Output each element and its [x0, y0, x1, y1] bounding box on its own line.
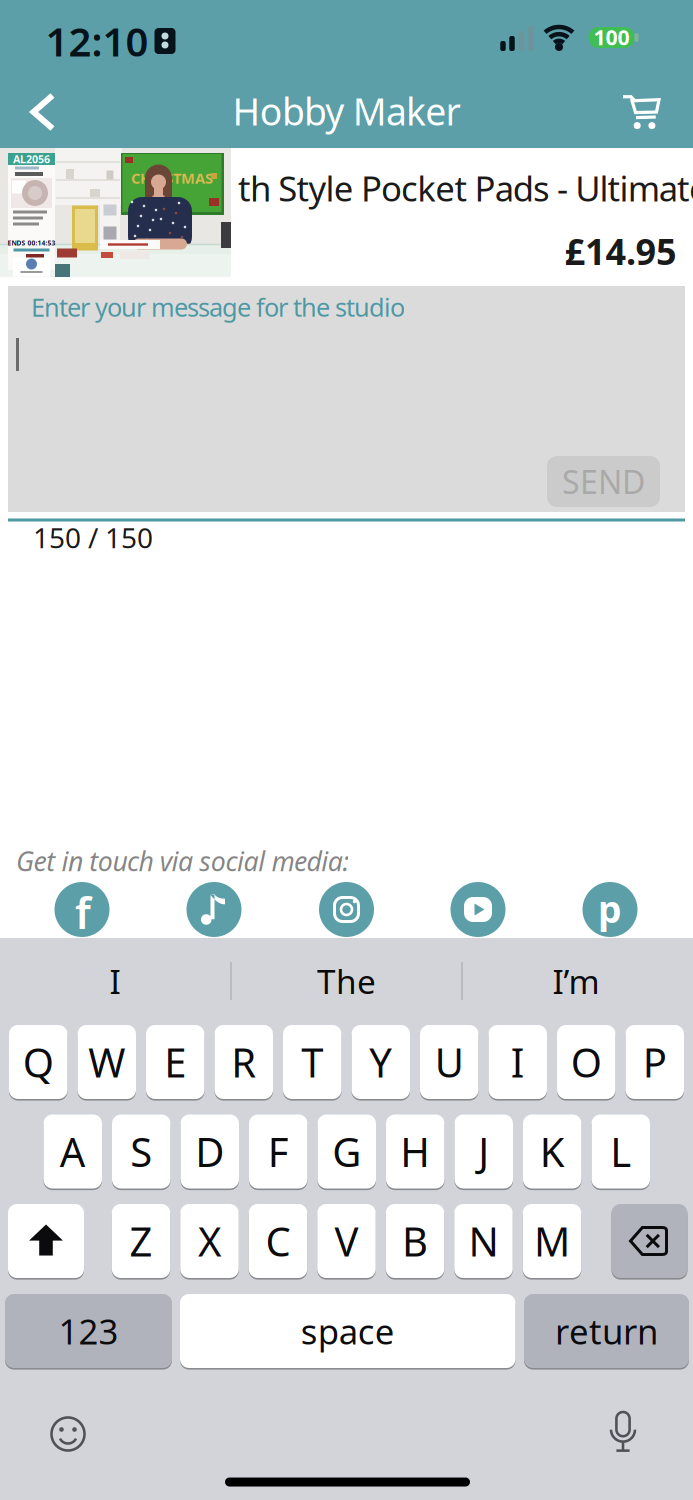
button[interactable]: The	[234, 948, 459, 1014]
staticText: p	[598, 884, 622, 933]
button[interactable]	[8, 1203, 84, 1279]
staticText: C	[265, 1214, 290, 1267]
button[interactable]	[319, 882, 374, 937]
button[interactable]: B	[386, 1203, 444, 1279]
staticText: A	[60, 1125, 86, 1178]
staticText: space	[301, 1308, 395, 1354]
staticText: S	[130, 1125, 152, 1178]
staticText: Enter your message for the studio	[31, 290, 405, 324]
staticText: I’m	[552, 959, 599, 1003]
button[interactable]: return	[524, 1293, 689, 1369]
staticText: Z	[129, 1214, 152, 1267]
button[interactable]: H	[386, 1113, 444, 1189]
staticText: CHR STMAS	[131, 168, 213, 188]
staticText: Y	[369, 1035, 392, 1088]
staticText: E	[164, 1035, 186, 1088]
button[interactable]: I	[488, 1024, 547, 1100]
button[interactable]: U	[420, 1024, 478, 1100]
staticText: I	[511, 1035, 525, 1088]
button[interactable]: J	[454, 1113, 513, 1189]
button[interactable]: SEND	[547, 456, 660, 507]
staticText: T	[301, 1035, 323, 1088]
button[interactable]: f	[54, 882, 109, 937]
button[interactable]: 123	[5, 1293, 172, 1369]
button[interactable]	[450, 882, 505, 937]
button[interactable]: I	[2, 948, 227, 1014]
staticText: L	[610, 1125, 631, 1178]
button[interactable]: K	[523, 1113, 581, 1189]
staticText: K	[540, 1125, 565, 1178]
button[interactable]	[612, 86, 670, 136]
staticText: AL2056	[13, 152, 50, 166]
button[interactable]: O	[557, 1024, 615, 1100]
button[interactable]: W	[77, 1024, 136, 1100]
button[interactable]: N	[454, 1203, 513, 1279]
button[interactable]: Y	[351, 1024, 410, 1100]
button[interactable]: G	[317, 1113, 376, 1189]
staticText: return	[555, 1308, 658, 1354]
staticText: 150 / 150	[33, 519, 153, 556]
button[interactable]: A	[43, 1113, 102, 1189]
button[interactable]: p	[582, 882, 637, 937]
staticText: J	[478, 1125, 489, 1178]
staticText: U	[435, 1035, 464, 1088]
button[interactable]: P	[625, 1024, 684, 1100]
staticText: B	[402, 1214, 428, 1267]
button[interactable]: I’m	[463, 948, 688, 1014]
button[interactable]: D	[180, 1113, 239, 1189]
staticText: O	[571, 1035, 602, 1088]
button[interactable]	[46, 1412, 90, 1456]
staticText: M	[534, 1214, 570, 1267]
staticText: ENDS 00:14:53	[7, 239, 55, 247]
staticText: f	[75, 884, 91, 941]
button[interactable]: C	[249, 1203, 307, 1279]
staticText: I	[109, 959, 120, 1003]
button[interactable]	[602, 1406, 644, 1460]
staticText: 100	[593, 23, 629, 51]
button[interactable]: L	[591, 1113, 650, 1189]
staticText: Q	[23, 1035, 54, 1088]
button[interactable]	[21, 83, 64, 140]
button[interactable]	[0, 148, 693, 280]
staticText: X	[198, 1214, 221, 1267]
button[interactable]: V	[317, 1203, 376, 1279]
button[interactable]: R	[214, 1024, 273, 1100]
button[interactable]: M	[523, 1203, 581, 1279]
button[interactable]	[611, 1203, 687, 1279]
button[interactable]: Q	[9, 1024, 67, 1100]
staticText: R	[231, 1035, 256, 1088]
staticText: F	[268, 1125, 289, 1178]
button[interactable]: F	[249, 1113, 307, 1189]
button[interactable]: space	[180, 1293, 515, 1369]
staticText: P	[643, 1035, 667, 1088]
staticText: th Style Pocket Pads - Ultimate Chri	[238, 165, 693, 211]
staticText: W	[88, 1035, 125, 1088]
button[interactable]: X	[180, 1203, 239, 1279]
button[interactable]: S	[112, 1113, 170, 1189]
staticText: SEND	[562, 460, 645, 503]
staticText: Hobby Maker	[232, 86, 460, 136]
button[interactable]: Z	[112, 1203, 170, 1279]
button[interactable]: T	[283, 1024, 341, 1100]
button[interactable]: E	[146, 1024, 204, 1100]
staticText: £14.95	[564, 227, 677, 275]
button[interactable]	[186, 882, 241, 937]
staticText: 123	[58, 1308, 118, 1354]
staticText: 12:10	[45, 14, 148, 67]
staticText: D	[195, 1125, 224, 1178]
staticText: G	[332, 1125, 361, 1178]
staticText: N	[468, 1214, 498, 1267]
staticText: H	[400, 1125, 430, 1178]
staticText: Get in touch via social media:	[16, 843, 349, 879]
staticText: The	[317, 959, 376, 1003]
staticText: V	[334, 1214, 358, 1267]
